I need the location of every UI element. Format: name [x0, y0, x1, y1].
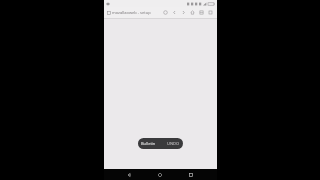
staticText: Bulletin blocked — [141, 141, 165, 146]
staticText: mozallaoweb - setup app... — [112, 10, 161, 15]
button[interactable]: More options — [206, 7, 215, 18]
staticText: UNDO — [167, 141, 180, 146]
button[interactable]: Home — [188, 7, 197, 18]
button[interactable]: Forward — [179, 7, 188, 18]
button[interactable]: Home — [153, 169, 167, 180]
button[interactable]: Page info — [106, 10, 112, 16]
button[interactable]: Refresh — [161, 7, 170, 18]
button[interactable]: UNDO — [167, 141, 180, 146]
button[interactable]: Back — [122, 169, 136, 180]
button[interactable]: Tabs — [197, 7, 206, 18]
button[interactable]: Back — [170, 7, 179, 18]
button[interactable]: mozallaoweb - setup app... — [112, 7, 161, 18]
button[interactable]: Bulletin blocked — [138, 138, 183, 149]
button[interactable]: Recent apps — [184, 169, 198, 180]
